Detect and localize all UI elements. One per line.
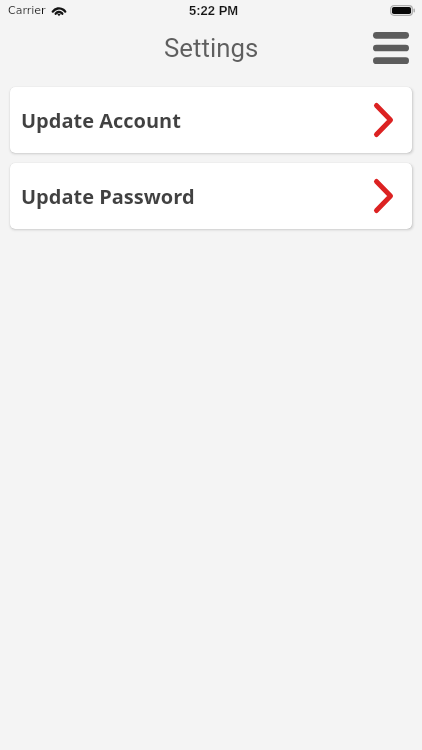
staticText: Update Password [21, 183, 195, 210]
button[interactable]: Update Password [10, 163, 412, 229]
staticText: Settings [164, 33, 259, 63]
staticText: Carrier [8, 4, 46, 17]
button[interactable]: Menu [369, 26, 413, 70]
staticText: Update Account [21, 107, 181, 134]
staticText: 5:22 PM [189, 3, 239, 18]
button[interactable]: Update Account [10, 87, 412, 153]
